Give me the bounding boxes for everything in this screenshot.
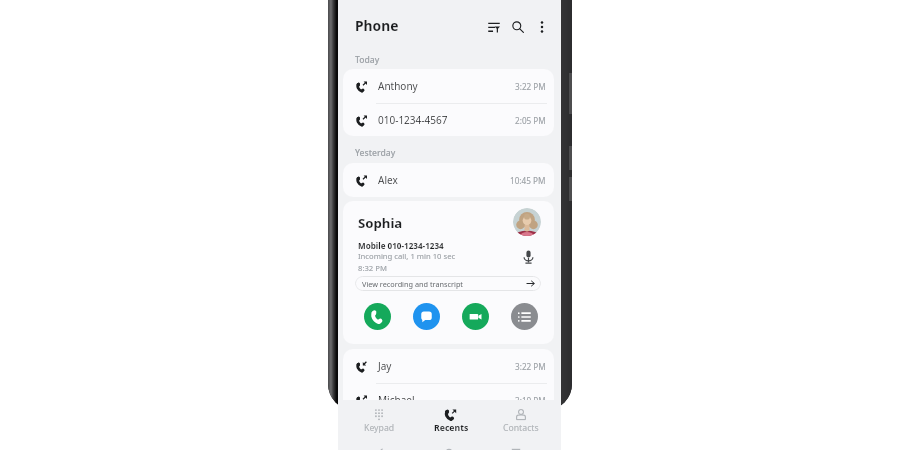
button[interactable]: Search	[506, 15, 530, 39]
staticText: Contacts	[503, 422, 539, 434]
button[interactable]: Alex	[343, 163, 554, 197]
staticText: 2:05 PM	[515, 115, 546, 126]
button[interactable]: Jay	[343, 349, 554, 383]
staticText: Yesterday	[355, 147, 396, 159]
staticText: View recording and transcript	[362, 279, 464, 289]
staticText: Mobile 010-1234-1234	[358, 240, 444, 251]
staticText: Jay	[378, 359, 392, 373]
staticText: Recents	[434, 422, 469, 434]
button[interactable]: Call	[364, 303, 391, 330]
staticText: Sophia	[358, 214, 403, 232]
staticText: 3:10 PM	[515, 395, 546, 406]
button[interactable]: More options	[530, 15, 554, 39]
staticText: 10:45 PM	[510, 175, 546, 186]
staticText: Anthony	[378, 79, 418, 93]
staticText: 8:32 PM	[358, 263, 387, 273]
button[interactable]: Video call	[462, 303, 489, 330]
staticText: 010-1234-4567	[378, 113, 448, 127]
staticText: 3:22 PM	[515, 81, 546, 92]
staticText: Today	[355, 54, 380, 66]
staticText: Incoming call, 1 min 10 sec	[358, 251, 456, 261]
button[interactable]: Voice recording	[518, 247, 538, 267]
staticText: Keypad	[364, 422, 395, 434]
button[interactable]: Sort	[482, 15, 506, 39]
staticText: Michael	[378, 393, 415, 407]
button[interactable]: 010-1234-4567	[343, 104, 554, 136]
staticText: Alex	[378, 173, 398, 187]
button[interactable]: More	[511, 303, 538, 330]
button[interactable]: View recording and transcript	[355, 276, 541, 291]
button[interactable]: Anthony	[343, 69, 554, 103]
staticText: Phone	[355, 16, 399, 35]
button[interactable]: Message	[413, 303, 440, 330]
button[interactable]: Keypad	[353, 400, 405, 442]
button[interactable]: Contacts	[495, 400, 547, 442]
button[interactable]: Recents	[425, 400, 477, 442]
staticText: 3:22 PM	[515, 361, 546, 372]
button[interactable]: Michael	[343, 384, 554, 416]
